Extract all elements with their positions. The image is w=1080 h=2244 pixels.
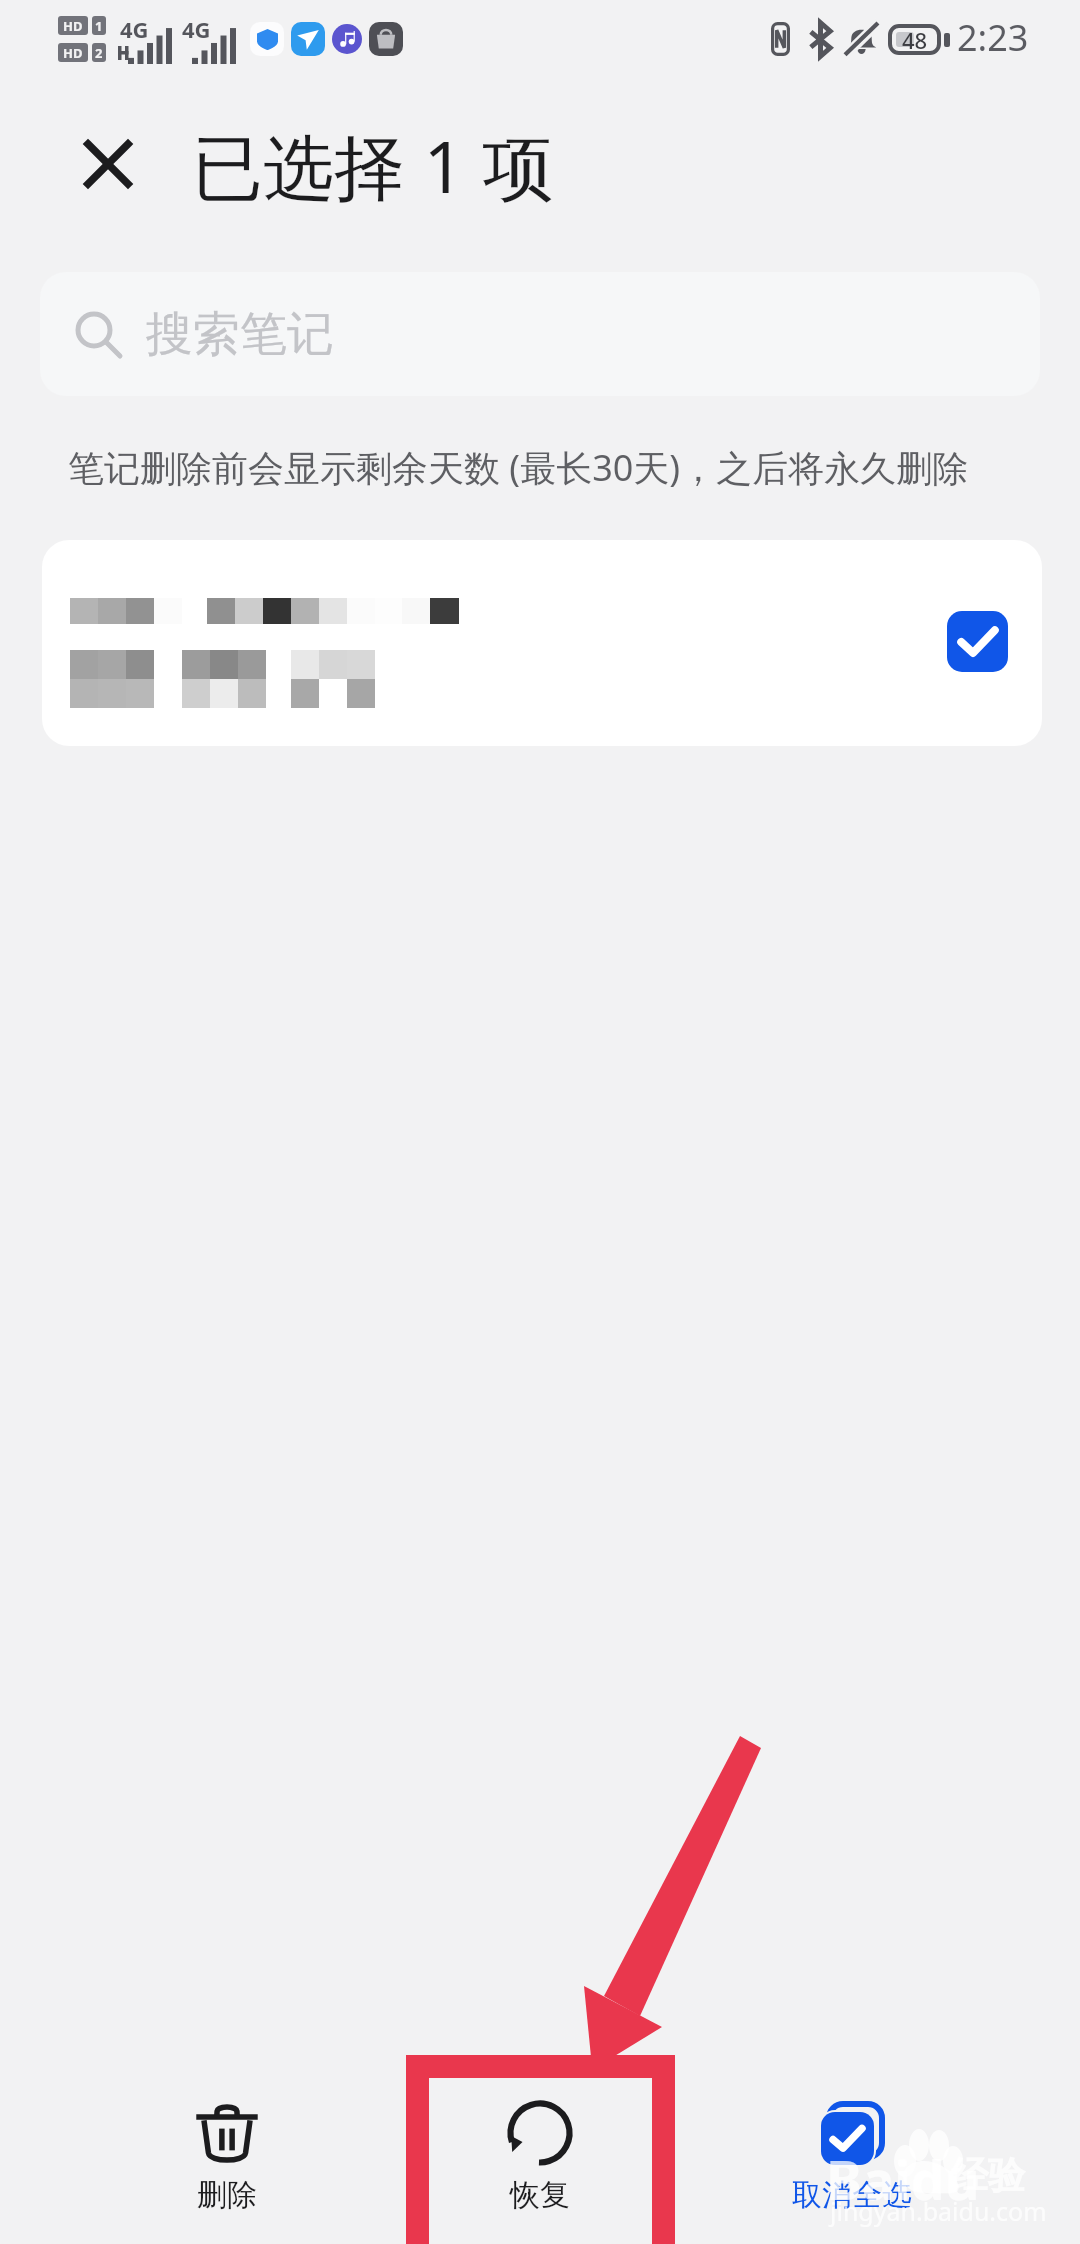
staticText: HD [63, 17, 83, 35]
staticText: 4G [120, 14, 149, 44]
button[interactable]: 取消全选 [722, 2080, 982, 2244]
staticText: 搜索笔记 [146, 305, 334, 364]
staticText: 48 [902, 25, 928, 55]
staticText: HD [63, 44, 83, 62]
button[interactable]: 恢复 [410, 2080, 670, 2244]
staticText: 经验 [951, 2152, 1025, 2199]
staticText: Baidu [826, 2142, 980, 2216]
button[interactable]: 关闭 [60, 116, 156, 212]
staticText: 删除 [197, 2176, 257, 2214]
staticText: 2:23 [957, 13, 1029, 62]
staticText: jingyan.baidu.com [830, 2194, 1047, 2228]
staticText: 取消全选 [792, 2176, 912, 2214]
staticText: 1 [95, 17, 103, 35]
staticText: 已选择 1 项 [192, 117, 554, 214]
staticText: 4G [182, 14, 211, 44]
button[interactable]: 已选中 [42, 540, 1042, 746]
staticText: 笔记删除前会显示剩余天数 (最长30天)，之后将永久删除 [68, 443, 969, 492]
staticText: 2 [95, 44, 103, 62]
staticText: 恢复 [510, 2176, 570, 2214]
button[interactable]: 已选中 [947, 611, 1008, 672]
button[interactable]: 搜索笔记 [40, 272, 1040, 396]
button[interactable]: 删除 [97, 2080, 357, 2244]
